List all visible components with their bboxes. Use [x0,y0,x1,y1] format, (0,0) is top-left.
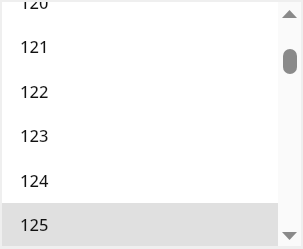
button[interactable]: 122 [2,70,278,115]
button[interactable]: 120 [2,2,278,26]
staticText: 123 [20,124,49,146]
button[interactable]: Scroll up [278,2,301,24]
staticText: 121 [20,35,49,57]
staticText: 122 [20,80,49,102]
button[interactable]: 125 [2,203,278,246]
button[interactable]: 121 [2,25,278,70]
staticText: 125 [20,213,49,235]
button[interactable]: 123 [2,114,278,159]
button[interactable]: Scroll position [283,49,297,74]
staticText: 120 [20,2,49,13]
staticText: 124 [20,169,49,191]
button[interactable]: 124 [2,159,278,204]
button[interactable]: Scroll down [278,224,301,246]
